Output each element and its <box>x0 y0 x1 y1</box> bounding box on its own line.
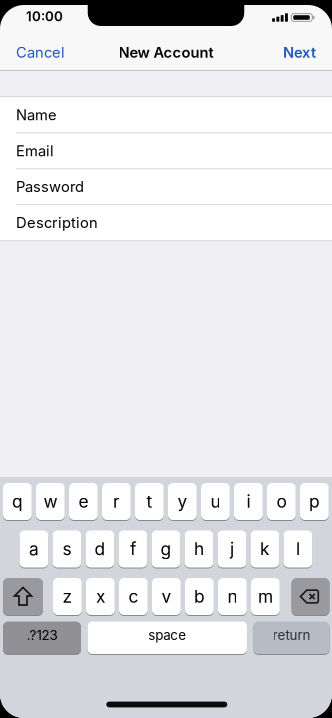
button[interactable]: j <box>217 530 246 567</box>
button[interactable]: e <box>69 483 98 520</box>
staticText: space <box>148 627 186 643</box>
staticText: Password <box>16 178 84 195</box>
button[interactable]: n <box>218 578 247 615</box>
button[interactable]: Password <box>0 169 332 205</box>
staticText: e <box>78 491 88 512</box>
button[interactable]: return <box>253 621 329 654</box>
button[interactable]: Email <box>0 133 332 169</box>
staticText: j <box>230 539 234 559</box>
button[interactable]: r <box>102 483 131 520</box>
staticText: z <box>62 586 72 607</box>
staticText: y <box>177 491 187 512</box>
staticText: o <box>276 491 286 512</box>
staticText: r <box>113 491 120 512</box>
staticText: q <box>12 491 23 512</box>
staticText: x <box>96 586 105 607</box>
staticText: 10:00 <box>26 9 63 24</box>
staticText: .?123 <box>26 627 57 643</box>
button[interactable]: w <box>36 483 65 520</box>
button[interactable]: s <box>52 530 81 567</box>
button[interactable]: l <box>283 530 312 567</box>
button[interactable]: a <box>19 530 48 567</box>
button[interactable]: d <box>85 530 114 567</box>
staticText: Cancel <box>16 44 65 61</box>
button[interactable]: c <box>119 578 148 615</box>
staticText: c <box>128 586 138 607</box>
button[interactable]: h <box>184 530 213 567</box>
button[interactable]: y <box>168 483 197 520</box>
staticText: b <box>194 586 205 607</box>
button[interactable]: .?123 <box>3 621 81 654</box>
staticText: Name <box>16 106 57 123</box>
button[interactable]: b <box>185 578 214 615</box>
staticText: n <box>227 586 237 607</box>
button[interactable]: u <box>201 483 230 520</box>
staticText: l <box>296 539 300 559</box>
button[interactable]: t <box>135 483 164 520</box>
staticText: s <box>62 539 71 559</box>
staticText: h <box>194 539 204 559</box>
button[interactable]: m <box>251 578 280 615</box>
staticText: g <box>160 539 171 559</box>
button[interactable]: Shift <box>3 578 43 615</box>
button[interactable]: q <box>3 483 32 520</box>
staticText: i <box>246 491 250 512</box>
staticText: v <box>161 586 171 607</box>
staticText: Description <box>16 214 98 231</box>
button[interactable]: x <box>86 578 115 615</box>
staticText: d <box>94 539 105 559</box>
staticText: p <box>309 491 320 512</box>
staticText: t <box>146 491 152 512</box>
button[interactable]: f <box>118 530 147 567</box>
staticText: m <box>258 586 273 607</box>
staticText: w <box>43 491 57 512</box>
button[interactable]: z <box>53 578 82 615</box>
button[interactable]: Name <box>0 97 332 133</box>
staticText: Email <box>16 142 54 159</box>
button[interactable]: Next <box>283 44 316 61</box>
button[interactable]: space <box>87 621 247 654</box>
button[interactable]: p <box>300 483 329 520</box>
staticText: Next <box>283 44 316 61</box>
button[interactable]: k <box>250 530 279 567</box>
staticText: a <box>29 539 39 559</box>
button[interactable]: g <box>151 530 180 567</box>
staticText: k <box>260 539 270 559</box>
button[interactable]: Cancel <box>16 44 65 61</box>
button[interactable]: v <box>152 578 181 615</box>
button[interactable]: i <box>234 483 263 520</box>
staticText: return <box>272 627 310 643</box>
staticText: New Account <box>118 44 213 61</box>
staticText: u <box>210 491 220 512</box>
button[interactable]: Delete <box>291 578 329 615</box>
button[interactable]: Description <box>0 205 332 240</box>
staticText: f <box>130 539 136 559</box>
button[interactable]: o <box>267 483 296 520</box>
